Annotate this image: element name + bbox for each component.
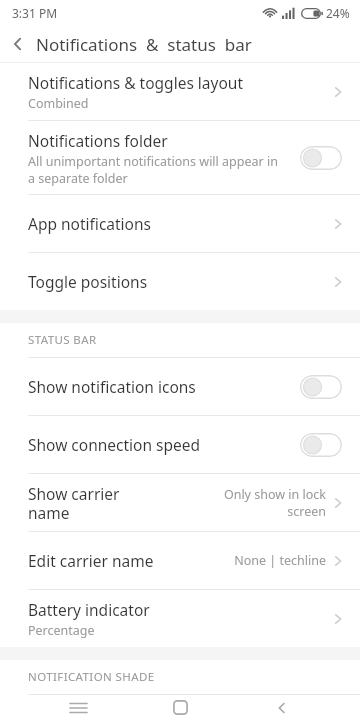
staticText: Show connection speed	[28, 434, 201, 455]
staticText: App notifications	[28, 213, 151, 234]
button[interactable]: Toggle	[300, 146, 342, 170]
staticText: Notifications & status bar	[36, 33, 252, 56]
button[interactable]: Toggle	[300, 433, 342, 457]
button[interactable]: Edit carrier name	[0, 532, 360, 589]
staticText: STATUS BAR	[28, 332, 97, 348]
staticText: Battery indicator	[28, 599, 150, 620]
button[interactable]: Toggle	[300, 375, 342, 399]
staticText: Toggle positions	[28, 271, 148, 292]
staticText: 24%	[326, 5, 350, 21]
button[interactable]: Home	[156, 695, 204, 720]
button[interactable]: Back	[0, 26, 36, 62]
staticText: Show notification icons	[28, 376, 196, 397]
button[interactable]: App notifications	[0, 195, 360, 252]
button[interactable]: Back	[258, 695, 306, 720]
button[interactable]: Notifications folder	[0, 121, 360, 194]
staticText: None | techline	[214, 552, 326, 569]
button[interactable]: Show carrier name	[0, 474, 360, 531]
staticText: Notifications & toggles layout	[28, 72, 243, 93]
button[interactable]: Show connection speed	[0, 416, 360, 473]
staticText: All unimportant notifications will appea…	[28, 153, 278, 186]
button[interactable]: Show notification icons	[0, 358, 360, 415]
staticText: Percentage	[28, 622, 95, 639]
button[interactable]: Notifications & toggles layout	[0, 63, 360, 120]
button[interactable]: Toggle positions	[0, 253, 360, 310]
staticText: Edit carrier name	[28, 550, 154, 571]
staticText: Show carrier name	[28, 483, 120, 523]
staticText: Combined	[28, 95, 89, 112]
button[interactable]: Menu	[54, 695, 102, 720]
staticText: Notifications folder	[28, 130, 168, 151]
staticText: NOTIFICATION SHADE	[28, 669, 155, 685]
button[interactable]: Battery indicator	[0, 590, 360, 647]
staticText: Only show in lock screen	[214, 486, 326, 520]
staticText: 3:31 PM	[12, 5, 58, 21]
